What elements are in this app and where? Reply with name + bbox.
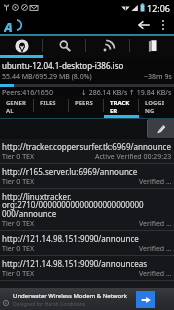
button[interactable]: PEERS <box>69 96 104 118</box>
staticText: 55.44 MB/695.29 MB (8.0%) <box>2 72 92 82</box>
staticText: ~38m 9s <box>144 72 172 82</box>
button[interactable]: Torrents <box>0 36 43 58</box>
staticText: TRACK ER <box>110 99 132 115</box>
staticText: Designed for Harsh Conditions <box>13 301 86 308</box>
button[interactable]: Edit trackers <box>148 119 174 138</box>
button[interactable]: Files <box>130 36 174 58</box>
staticText: Verified ... <box>139 219 172 229</box>
staticText: http://121.14.98.151:9090/announce <box>2 233 139 244</box>
button[interactable]: Underwater Wireless Modem & Network <box>0 288 174 310</box>
staticText: GENER AL <box>6 99 28 115</box>
button[interactable]: http://r165.server.lu:6969/announce <box>0 164 174 188</box>
staticText: Verified ... <box>139 177 172 187</box>
staticText: http://121.14.98.151:9090/announceas <box>2 258 148 269</box>
staticText: Tier 0 TEX <box>2 177 35 187</box>
button[interactable]: http://121.14.98.151:9090/announceas <box>0 256 174 280</box>
button[interactable]: http://linuxtracker. org:2710/0000000000… <box>0 189 174 230</box>
button[interactable]: LOGGI NG <box>139 96 174 118</box>
staticText: LOGGI NG <box>145 99 167 115</box>
staticText: Active Verified 00:29:23 <box>95 152 172 162</box>
staticText: http://linuxtracker. org:2710/0000000000… <box>2 191 144 219</box>
staticText: 12:06 <box>147 2 171 14</box>
staticText: http://r165.server.lu:6969/announce <box>2 166 138 177</box>
button[interactable]: RSS <box>86 36 130 58</box>
button[interactable]: Back <box>134 15 154 34</box>
staticText: Peers:416/1650 <box>2 88 53 96</box>
button[interactable]: Search <box>43 36 86 58</box>
button[interactable]: GENER AL <box>0 96 34 118</box>
staticText: Tier 0 TEX <box>2 152 35 162</box>
button[interactable]: FILES <box>34 96 69 118</box>
button[interactable]: http://121.14.98.151:9090/announce <box>0 231 174 255</box>
staticText: PEERS <box>75 99 93 107</box>
staticText: ubuntu-12.04.1-desktop-i386.iso <box>2 60 124 71</box>
button[interactable]: http://tracker.coppersurfer.tk:6969/anno… <box>0 139 174 163</box>
staticText: Underwater Wireless Modem & Network <box>13 292 127 300</box>
staticText: http://tracker.coppersurfer.tk:6969/anno… <box>2 141 171 152</box>
staticText: Verified ... <box>139 244 172 254</box>
staticText: Tier 0 TEX <box>2 269 35 279</box>
staticText: A <box>4 18 13 32</box>
staticText: FILES <box>40 99 56 107</box>
button[interactable]: TRACK ER <box>104 96 139 118</box>
staticText: Tier 0 TEX <box>2 244 35 254</box>
staticText: ↓ 286.14 KB/s ↑ 19.84 KB/s <box>81 88 172 96</box>
staticText: Verified ... <box>139 269 172 279</box>
button[interactable]: More options <box>156 15 170 34</box>
button[interactable]: Open advertisement <box>136 291 155 308</box>
staticText: Tier 0 TEX <box>2 219 35 229</box>
